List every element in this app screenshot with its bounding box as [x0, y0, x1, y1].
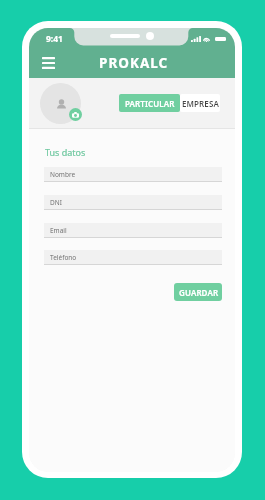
staticText: Tus datos: [45, 146, 86, 158]
button[interactable]: Change profile photo: [69, 108, 82, 121]
button[interactable]: DNI: [44, 195, 222, 210]
button[interactable]: Email: [44, 223, 222, 238]
button[interactable]: Teléfono: [44, 250, 222, 265]
staticText: PROKALC: [99, 54, 169, 72]
staticText: Teléfono: [50, 253, 77, 262]
button[interactable]: PARTICULAR: [119, 94, 180, 112]
button[interactable]: Nombre: [44, 167, 222, 182]
staticText: EMPRESA: [182, 98, 219, 109]
staticText: Email: [50, 226, 67, 235]
staticText: PARTICULAR: [125, 98, 175, 109]
staticText: 9:41: [46, 33, 63, 45]
staticText: GUARDAR: [179, 287, 219, 298]
staticText: DNI: [50, 198, 62, 207]
staticText: Nombre: [50, 170, 76, 179]
button[interactable]: GUARDAR: [174, 283, 222, 301]
button[interactable]: Open navigation menu: [38, 53, 58, 73]
button[interactable]: EMPRESA: [180, 94, 220, 112]
